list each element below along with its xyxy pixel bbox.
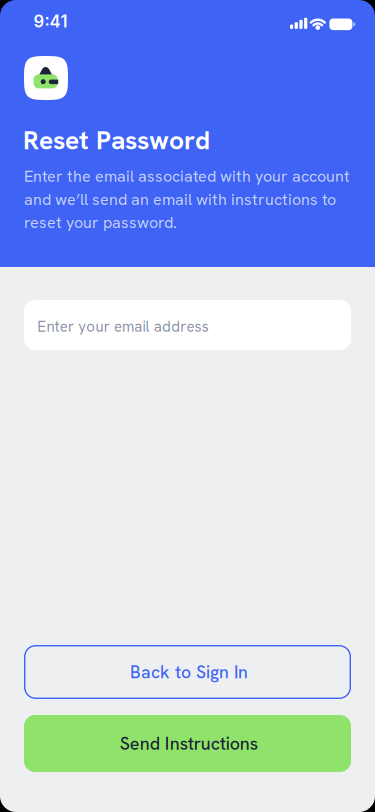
button[interactable]: Send Instructions — [24, 715, 351, 772]
staticText: 9:41 — [33, 11, 67, 31]
button[interactable]: Back to Sign In — [24, 645, 351, 699]
button[interactable]: Enter your email address — [24, 300, 351, 350]
staticText: Send Instructions — [120, 732, 258, 755]
staticText: Enter your email address — [37, 317, 209, 336]
staticText: Reset Password — [23, 123, 210, 157]
staticText: Back to Sign In — [130, 660, 248, 683]
staticText: Enter the email associated with your acc… — [24, 166, 350, 233]
